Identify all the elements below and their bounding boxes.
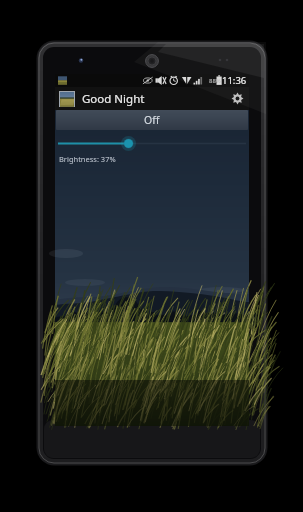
- staticText: 88%: [209, 77, 221, 85]
- button[interactable]: Settings: [226, 87, 249, 110]
- staticText: Brightness: 37%: [59, 154, 116, 164]
- staticText: 11:36: [222, 74, 247, 87]
- button[interactable]: Brightness: 37%: [58, 136, 246, 164]
- button[interactable]: Off: [56, 110, 248, 130]
- staticText: Off: [144, 113, 160, 127]
- staticText: Good Night: [82, 91, 145, 107]
